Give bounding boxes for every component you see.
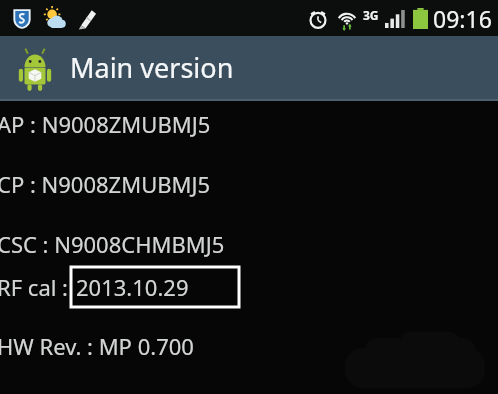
button[interactable]: RF cal : <box>0 259 498 315</box>
staticText: 2013.10.29 <box>76 272 189 302</box>
button[interactable]: Main version <box>0 36 498 99</box>
staticText: HW Rev. : MP 0.700 <box>0 331 194 361</box>
staticText: AP : N9008ZMUBMJ5 <box>0 109 211 139</box>
staticText: Main version <box>70 49 234 86</box>
button[interactable]: CSC : N9008CHMBMJ5 <box>0 199 498 259</box>
button[interactable]: AP : N9008ZMUBMJ5 <box>0 101 498 139</box>
staticText: CP : N9008ZMUBMJ5 <box>0 169 211 199</box>
staticText: 3G <box>363 7 379 23</box>
staticText: 09:16 <box>433 3 492 34</box>
button[interactable]: CP : N9008ZMUBMJ5 <box>0 139 498 199</box>
button[interactable]: HW Rev. : MP 0.700 <box>0 315 498 361</box>
staticText: RF cal : <box>0 272 69 302</box>
staticText: CSC : N9008CHMBMJ5 <box>0 229 225 259</box>
